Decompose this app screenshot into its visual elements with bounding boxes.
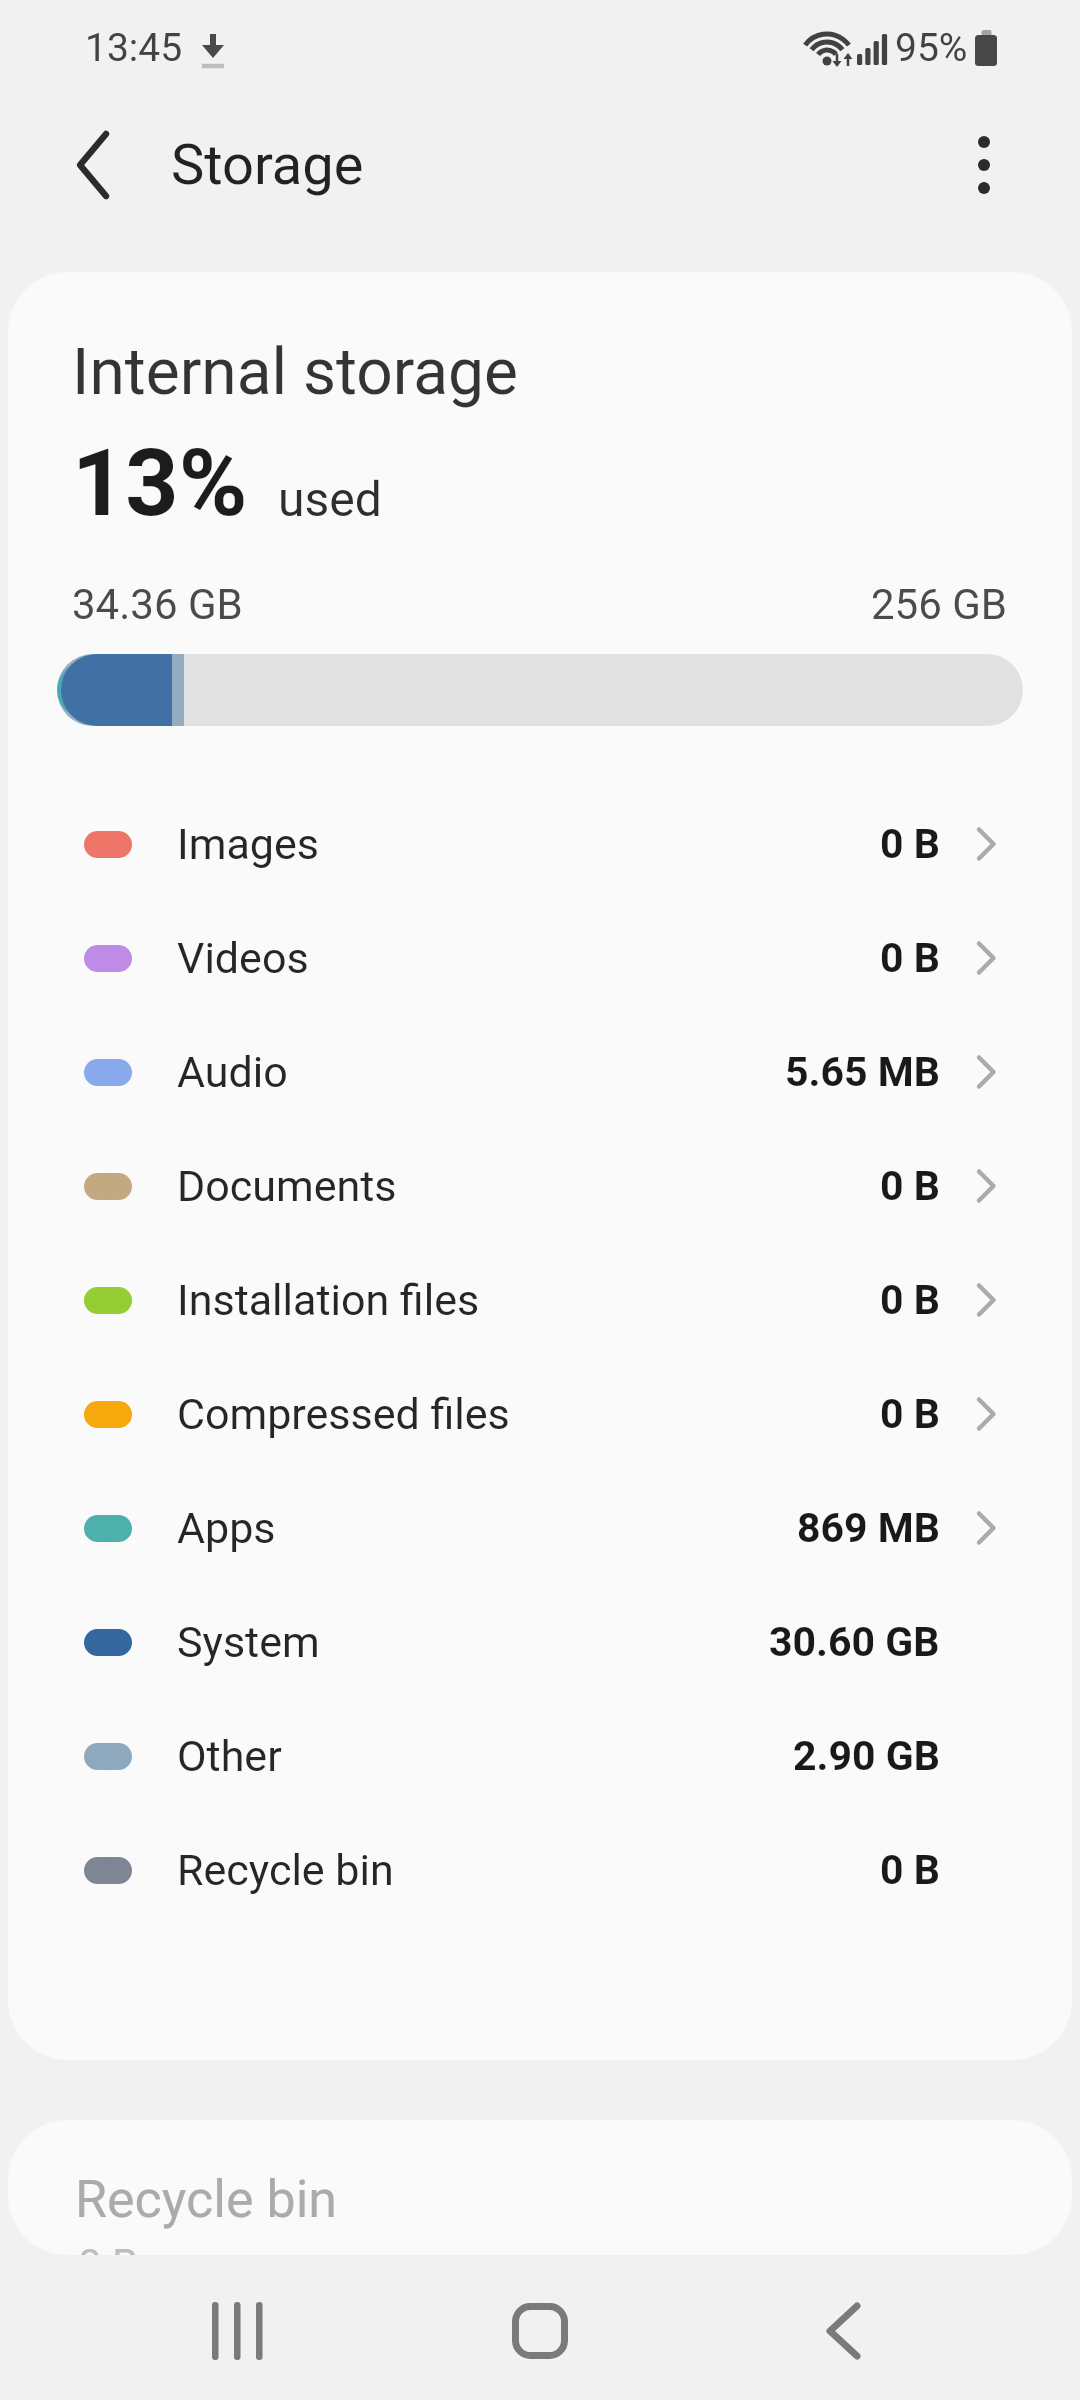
staticText: Compressed files <box>177 1389 510 1439</box>
staticText: 0 B <box>880 1390 940 1438</box>
staticText: 0 B <box>880 1846 940 1894</box>
staticText: Internal storage <box>72 335 518 410</box>
staticText: 5.65 MB <box>785 1048 940 1096</box>
staticText: 0 B <box>880 1162 940 1210</box>
staticText: 13% <box>72 429 248 538</box>
staticText: 0 B <box>880 820 940 868</box>
staticText: 0 B <box>880 1276 940 1324</box>
staticText: Other <box>177 1731 282 1781</box>
staticText: 0 B <box>78 2240 139 2255</box>
staticText: Storage <box>171 132 364 198</box>
staticText: 30.60 GB <box>769 1618 940 1666</box>
staticText: Images <box>177 819 319 869</box>
staticText: Recycle bin <box>177 1845 394 1895</box>
staticText: 13:45 <box>85 25 183 71</box>
staticText: 34.36 GB <box>72 580 243 629</box>
staticText: 0 B <box>880 934 940 982</box>
staticText: 95% <box>895 25 968 71</box>
staticText: Videos <box>177 933 309 983</box>
staticText: 869 MB <box>797 1504 940 1552</box>
staticText: Documents <box>177 1161 397 1211</box>
staticText: Audio <box>177 1047 288 1097</box>
staticText: System <box>177 1617 320 1667</box>
staticText: used <box>278 471 382 527</box>
staticText: Recycle bin <box>75 2169 338 2230</box>
staticText: Apps <box>177 1503 276 1553</box>
staticText: Installation files <box>177 1275 480 1325</box>
staticText: 2.90 GB <box>793 1732 940 1780</box>
staticText: 256 GB <box>871 580 1008 629</box>
